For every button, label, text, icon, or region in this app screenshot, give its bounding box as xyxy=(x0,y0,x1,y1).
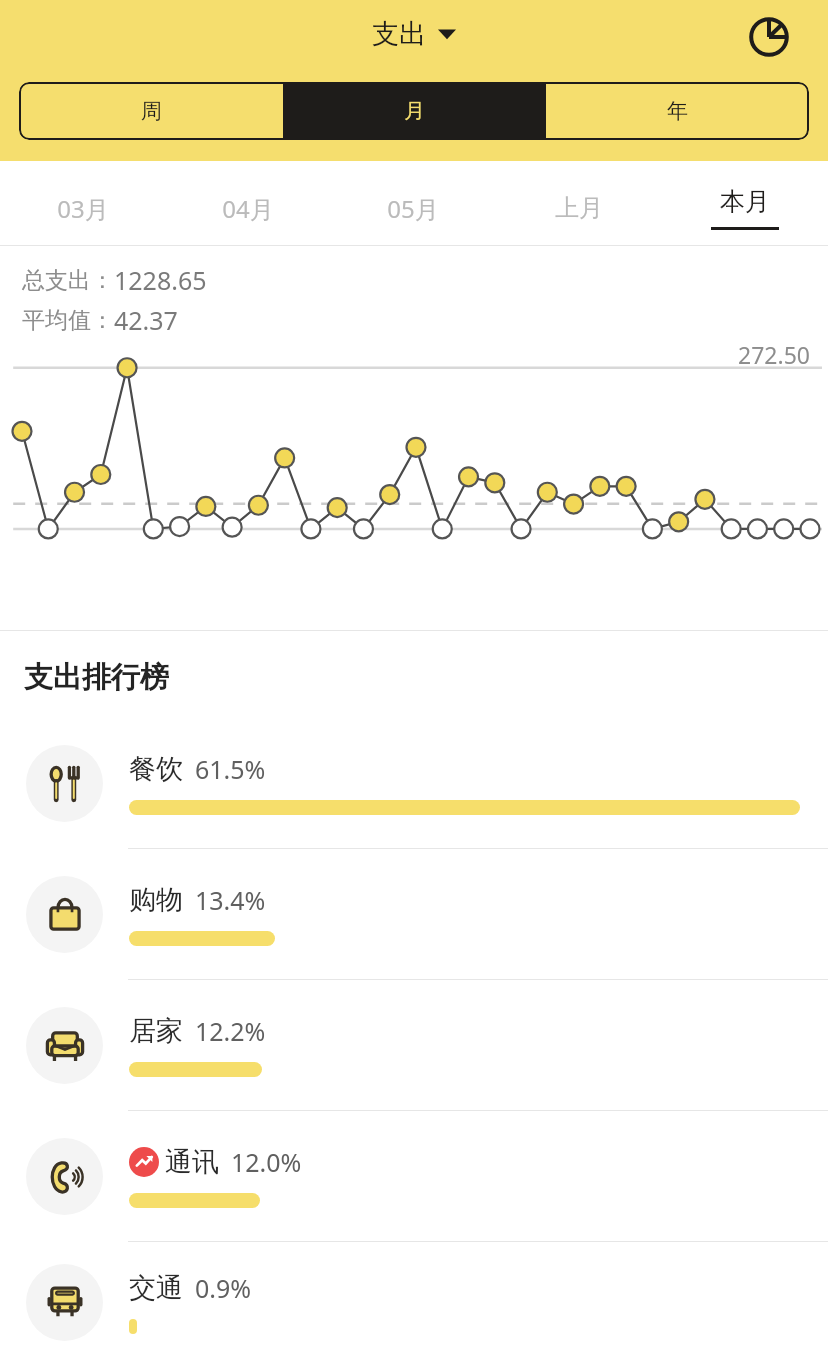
staticText: 购物 xyxy=(129,883,183,917)
staticText: 年 xyxy=(667,98,688,124)
button[interactable]: 通讯 xyxy=(0,1111,828,1241)
staticText: 1228.65 xyxy=(114,263,207,297)
staticText: 平均值： xyxy=(22,306,114,335)
staticText: 餐饮 xyxy=(129,752,183,786)
button[interactable]: 03月 xyxy=(0,161,165,245)
button[interactable]: 支出 xyxy=(372,17,456,51)
button[interactable]: 上月 xyxy=(496,161,662,245)
button[interactable]: 购物 xyxy=(0,849,828,979)
button[interactable]: 05月 xyxy=(330,161,496,245)
staticText: 03月 xyxy=(57,192,109,225)
staticText: 支出排行榜 xyxy=(24,659,169,696)
button[interactable]: 月 xyxy=(283,82,546,140)
staticText: 周 xyxy=(141,98,162,124)
button[interactable]: 年 xyxy=(546,82,809,140)
button[interactable]: 交通 xyxy=(0,1242,828,1362)
staticText: 42.37 xyxy=(114,303,178,337)
button[interactable]: 周 xyxy=(19,82,283,140)
staticText: 61.5% xyxy=(195,752,266,786)
staticText: 上月 xyxy=(555,193,603,223)
staticText: 12.2% xyxy=(195,1014,266,1048)
staticText: 通讯 xyxy=(165,1145,219,1179)
staticText: 12.0% xyxy=(231,1145,302,1179)
staticText: 支出 xyxy=(372,17,426,51)
button[interactable]: 餐饮 xyxy=(0,718,828,848)
staticText: 13.4% xyxy=(195,883,266,917)
staticText: 05月 xyxy=(387,192,439,225)
staticText: 04月 xyxy=(222,192,274,225)
button[interactable]: 04月 xyxy=(165,161,330,245)
staticText: 月 xyxy=(404,98,425,124)
button[interactable]: 居家 xyxy=(0,980,828,1110)
staticText: 0.9% xyxy=(195,1271,252,1305)
staticText: 居家 xyxy=(129,1014,183,1048)
staticText: 本月 xyxy=(720,186,770,217)
staticText: 总支出： xyxy=(22,266,114,295)
button[interactable]: 本月 xyxy=(662,161,828,245)
staticText: 272.50 xyxy=(738,339,810,370)
button[interactable]: Statistics xyxy=(746,14,792,60)
staticText: 交通 xyxy=(129,1271,183,1305)
